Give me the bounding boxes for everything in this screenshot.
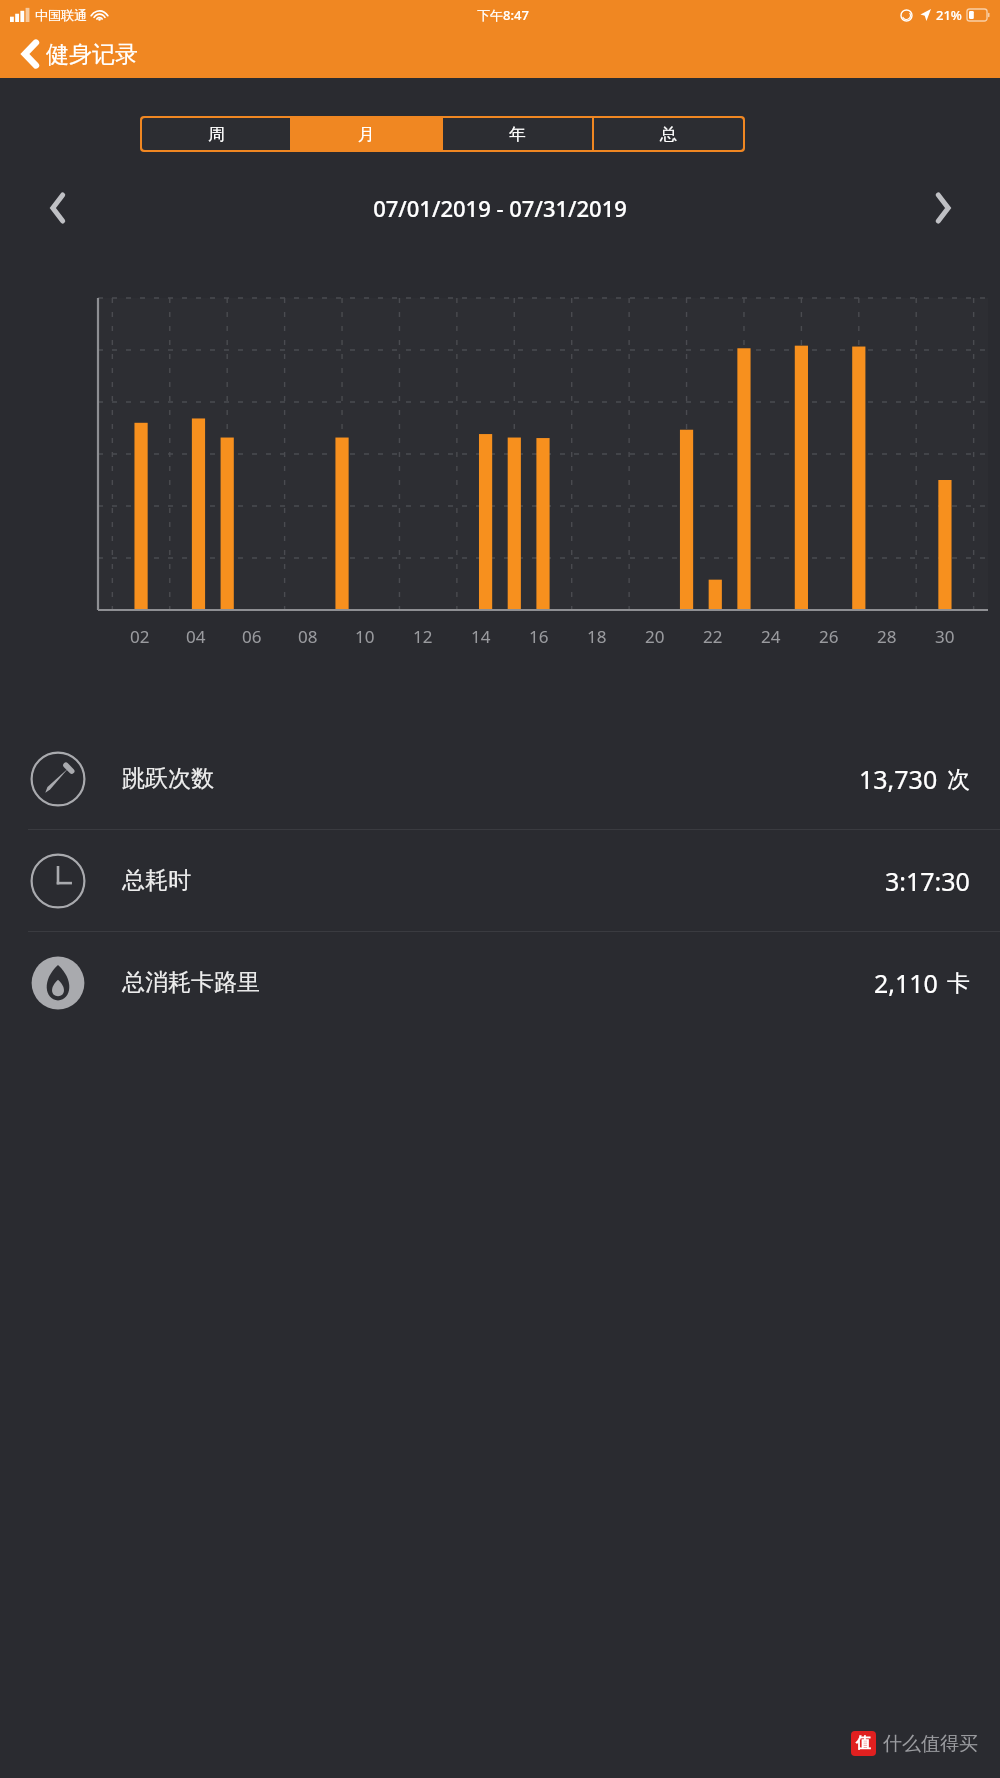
staticText: 跳跃次数 [122, 764, 214, 793]
button[interactable]: 月 [292, 118, 441, 150]
staticText: 22 [703, 625, 723, 648]
staticText: 2,110 [874, 966, 938, 1000]
button[interactable]: 总耗时 [0, 830, 1000, 931]
staticText: 年 [509, 124, 526, 145]
staticText: 18 [587, 625, 607, 648]
staticText: 什么值得买 [883, 1732, 978, 1756]
staticText: 下午8:47 [477, 6, 529, 24]
staticText: 卡 [947, 969, 970, 998]
staticText: 08 [298, 625, 318, 648]
staticText: 30 [935, 625, 955, 648]
staticText: 健身记录 [46, 40, 138, 69]
staticText: 06 [242, 625, 262, 648]
button[interactable]: 周 [142, 118, 290, 150]
staticText: 21% [936, 6, 962, 24]
staticText: 24 [761, 625, 781, 648]
button[interactable]: Next period [918, 188, 966, 228]
staticText: 总耗时 [122, 866, 191, 895]
staticText: 14 [471, 625, 491, 648]
staticText: 次 [947, 765, 970, 794]
staticText: 周 [208, 124, 225, 145]
staticText: 07/01/2019 - 07/31/2019 [82, 193, 918, 223]
button[interactable]: 年 [443, 118, 592, 150]
staticText: 月 [358, 124, 375, 145]
staticText: 13,730 [859, 762, 938, 796]
staticText: 26 [819, 625, 839, 648]
staticText: 04 [186, 625, 206, 648]
button[interactable]: 跳跃次数 [0, 728, 1000, 829]
staticText: 10 [355, 625, 375, 648]
button[interactable]: Back [0, 35, 146, 73]
staticText: 总消耗卡路里 [122, 968, 260, 997]
staticText: 值 [856, 1734, 871, 1753]
staticText: 16 [529, 625, 549, 648]
staticText: 02 [130, 625, 150, 648]
button[interactable]: Previous period [34, 188, 82, 228]
staticText: 中国联通 [35, 7, 87, 23]
button[interactable]: 总 [594, 118, 743, 150]
button[interactable]: 总消耗卡路里 [0, 932, 1000, 1033]
staticText: 3:17:30 [885, 864, 970, 898]
staticText: 12 [413, 625, 433, 648]
staticText: 20 [645, 625, 665, 648]
staticText: 28 [877, 625, 897, 648]
staticText: 总 [660, 124, 677, 145]
